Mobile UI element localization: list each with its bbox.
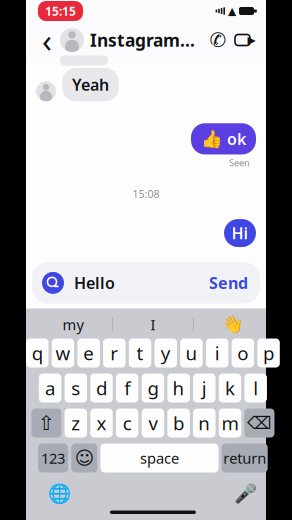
button[interactable]: x <box>90 408 113 437</box>
button[interactable]: t <box>129 338 151 367</box>
staticText: ☺ <box>75 447 94 469</box>
button[interactable]: Change keyboard <box>45 480 75 506</box>
staticText: d <box>96 376 107 400</box>
button[interactable]: o <box>232 338 254 367</box>
staticText: ▶ <box>247 34 255 46</box>
button[interactable]: Delete <box>244 408 274 437</box>
button[interactable]: Emoji <box>71 443 97 472</box>
staticText: t <box>137 341 144 365</box>
button[interactable]: Instagram... <box>60 23 195 57</box>
staticText: s <box>71 376 80 400</box>
button[interactable]: I <box>113 310 193 338</box>
button[interactable]: u <box>180 338 203 367</box>
button[interactable]: 123 <box>38 443 68 472</box>
staticText: ok <box>227 128 246 149</box>
button[interactable]: i <box>206 338 228 367</box>
staticText: my <box>62 315 83 334</box>
button[interactable]: k <box>219 373 241 402</box>
staticText: i <box>215 341 220 365</box>
button[interactable]: e <box>77 338 100 367</box>
staticText: f <box>124 376 130 400</box>
staticText: 🎤 <box>234 483 257 504</box>
button[interactable]: Video call <box>232 23 258 57</box>
staticText: u <box>185 341 197 365</box>
staticText: p <box>263 341 274 365</box>
button[interactable]: h <box>167 373 190 402</box>
button[interactable]: Shift <box>31 408 61 437</box>
staticText: r <box>110 341 118 365</box>
button[interactable]: space <box>100 443 218 472</box>
staticText: Send <box>209 272 248 293</box>
staticText: ⇧ <box>38 412 55 434</box>
button[interactable]: c <box>116 408 138 437</box>
staticText: j <box>202 376 207 400</box>
button[interactable]: Dictate <box>231 480 261 506</box>
button[interactable]: l <box>244 373 267 402</box>
staticText: h <box>173 376 185 400</box>
staticText: 🌐 <box>48 483 71 504</box>
staticText: l <box>253 376 258 400</box>
button[interactable]: b <box>167 408 190 437</box>
staticText: v <box>148 411 157 435</box>
staticText: Hi <box>231 222 248 244</box>
staticText: n <box>198 411 210 435</box>
staticText: c <box>123 411 132 435</box>
staticText: Instagram... <box>90 28 195 51</box>
staticText: z <box>71 411 80 435</box>
staticText: g <box>147 376 158 400</box>
staticText: e <box>83 341 94 365</box>
button[interactable]: Send <box>205 266 252 299</box>
staticText: 123 <box>41 448 65 468</box>
button[interactable]: y <box>154 338 177 367</box>
staticText: y <box>161 341 171 365</box>
staticText: q <box>32 341 43 365</box>
staticText: b <box>173 411 184 435</box>
button[interactable]: Back <box>34 23 60 57</box>
staticText: ✆ <box>209 29 226 51</box>
staticText: Hello <box>74 272 115 293</box>
staticText: 👋 <box>222 315 244 334</box>
button[interactable]: w <box>52 338 74 367</box>
button[interactable]: Search <box>40 270 66 296</box>
button[interactable]: v <box>142 408 164 437</box>
staticText: ‹ <box>42 19 52 61</box>
button[interactable]: s <box>65 373 87 402</box>
staticText: w <box>55 341 70 365</box>
staticText: Seen <box>229 156 250 169</box>
button[interactable]: 👋 <box>194 310 272 338</box>
staticText: 👍 <box>201 129 223 149</box>
button[interactable]: my <box>34 310 112 338</box>
staticText: space <box>140 448 179 468</box>
button[interactable]: g <box>142 373 164 402</box>
staticText: k <box>225 376 235 400</box>
staticText: ⌫ <box>247 413 272 433</box>
staticText: m <box>221 411 238 435</box>
staticText: Yeah <box>72 74 109 95</box>
staticText: x <box>96 411 106 435</box>
staticText: 15:08 <box>132 187 159 201</box>
button[interactable]: r <box>103 338 126 367</box>
button[interactable]: p <box>257 338 280 367</box>
button[interactable]: f <box>116 373 138 402</box>
button[interactable]: a <box>39 373 61 402</box>
button[interactable]: d <box>90 373 113 402</box>
button[interactable]: q <box>26 338 48 367</box>
button[interactable]: n <box>193 408 216 437</box>
button[interactable]: z <box>65 408 87 437</box>
staticText: o <box>237 341 248 365</box>
button[interactable]: j <box>193 373 216 402</box>
button[interactable]: Audio call <box>204 23 232 57</box>
staticText: return <box>223 448 266 468</box>
button[interactable]: return <box>222 443 268 472</box>
staticText: I <box>150 315 155 334</box>
staticText: a <box>45 376 55 400</box>
button[interactable]: m <box>219 408 241 437</box>
staticText: ▲ <box>228 5 236 17</box>
staticText: 15:15 <box>45 3 76 19</box>
